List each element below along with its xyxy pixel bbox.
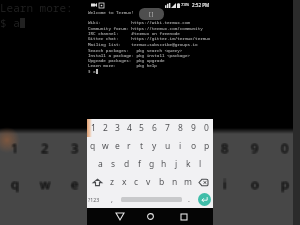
staticText: e — [71, 175, 79, 193]
button[interactable]: Space — [118, 191, 184, 208]
button[interactable]: a — [94, 155, 107, 173]
staticText: 1 — [12, 139, 20, 157]
staticText: u — [190, 174, 199, 192]
staticText: t — [140, 140, 144, 152]
staticText: 8 — [221, 139, 229, 157]
button[interactable]: g — [146, 155, 158, 173]
button[interactable]: Back — [109, 208, 131, 225]
button[interactable]: , — [105, 191, 118, 208]
staticText: 7 — [191, 139, 199, 157]
staticText: y — [161, 176, 168, 194]
staticText: p — [280, 175, 288, 193]
staticText: r — [101, 175, 107, 193]
staticText: y — [161, 174, 168, 192]
button[interactable]: 7 — [161, 119, 174, 137]
button[interactable]: i — [174, 137, 187, 155]
button[interactable]: s — [107, 155, 120, 173]
button[interactable]: u — [161, 137, 174, 155]
staticText: 0 — [280, 140, 288, 158]
staticText: w — [39, 176, 50, 194]
button[interactable]: Shift — [88, 173, 106, 191]
staticText: q — [10, 174, 18, 192]
staticText: r — [127, 140, 131, 152]
staticText: w — [41, 174, 52, 192]
button[interactable]: l — [194, 155, 206, 173]
button[interactable]: x — [118, 173, 130, 191]
staticText: 4 — [127, 122, 132, 134]
button[interactable]: b — [155, 173, 168, 191]
staticText: 1 — [10, 140, 18, 158]
button[interactable]: o — [187, 137, 200, 155]
button[interactable]: Home — [139, 208, 161, 225]
button[interactable]: j — [170, 155, 182, 173]
staticText: 6 — [160, 138, 168, 156]
button[interactable]: Backspace — [194, 173, 212, 191]
staticText: 1 — [11, 140, 19, 158]
staticText: Mailing list: termux+subscribe@groups.io — [88, 41, 198, 47]
staticText: p — [204, 140, 210, 152]
staticText: Install a package: pkg install <package> — [88, 52, 191, 58]
button[interactable]: 0 — [200, 119, 213, 137]
button[interactable]: f — [133, 155, 146, 173]
staticText: 0 — [282, 140, 290, 158]
button[interactable]: 9 — [187, 119, 200, 137]
button[interactable]: Enter — [195, 191, 213, 208]
button[interactable]: v — [142, 173, 155, 191]
button[interactable]: . — [183, 191, 195, 208]
button[interactable]: d — [120, 155, 133, 173]
button[interactable]: 5 — [135, 119, 148, 137]
button[interactable]: 1 — [87, 119, 99, 137]
staticText: p — [282, 176, 290, 194]
staticText: 1 — [10, 138, 18, 156]
staticText: g — [149, 158, 155, 170]
button[interactable]: 2 — [99, 119, 111, 137]
staticText: t — [133, 174, 138, 192]
button[interactable]: Recents — [173, 208, 195, 225]
staticText: 1 — [11, 138, 19, 156]
button[interactable]: z — [106, 173, 118, 191]
staticText: i — [222, 175, 226, 193]
staticText: 6 — [160, 139, 168, 157]
staticText: 8 — [221, 138, 229, 156]
staticText: Search packages: pkg search <query> — [88, 47, 183, 53]
staticText: r — [102, 175, 108, 193]
button[interactable]: w — [99, 137, 111, 155]
staticText: r — [102, 176, 108, 194]
staticText: q — [10, 176, 18, 194]
button[interactable]: t — [135, 137, 148, 155]
button[interactable]: m — [181, 173, 194, 191]
button[interactable]: r — [123, 137, 135, 155]
staticText: 0 — [280, 138, 288, 156]
button[interactable]: q — [87, 137, 99, 155]
staticText: 2 — [40, 139, 48, 157]
staticText: 8 — [220, 139, 228, 157]
staticText: 9 — [252, 140, 260, 158]
staticText: w — [40, 176, 51, 194]
staticText: Gitter chat: https://gitter.im/termux/te… — [88, 35, 211, 41]
button[interactable]: k — [182, 155, 194, 173]
staticText: 4 — [101, 139, 109, 157]
button[interactable]: n — [168, 173, 181, 191]
staticText: Wiki: https://wiki.termux.com — [88, 19, 191, 25]
staticText: Learn more: pkg help — [88, 62, 157, 68]
button[interactable]: ?123 — [87, 191, 101, 208]
staticText: o — [250, 175, 258, 193]
button[interactable]: 3 — [111, 119, 123, 137]
staticText: 2 — [41, 139, 49, 157]
button[interactable]: c — [130, 173, 142, 191]
button[interactable]: 8 — [174, 119, 187, 137]
staticText: o — [191, 140, 197, 152]
button[interactable]: h — [158, 155, 170, 173]
staticText: 9 — [250, 138, 258, 156]
staticText: 6 — [162, 138, 170, 156]
button[interactable]: e — [111, 137, 123, 155]
button[interactable]: p — [200, 137, 213, 155]
staticText: Welcome to Termux! — [88, 9, 134, 15]
staticText: o — [252, 175, 260, 193]
staticText: u — [191, 175, 200, 193]
button[interactable]: y — [148, 137, 161, 155]
button[interactable]: 4 — [123, 119, 135, 137]
button[interactable]: 6 — [148, 119, 161, 137]
